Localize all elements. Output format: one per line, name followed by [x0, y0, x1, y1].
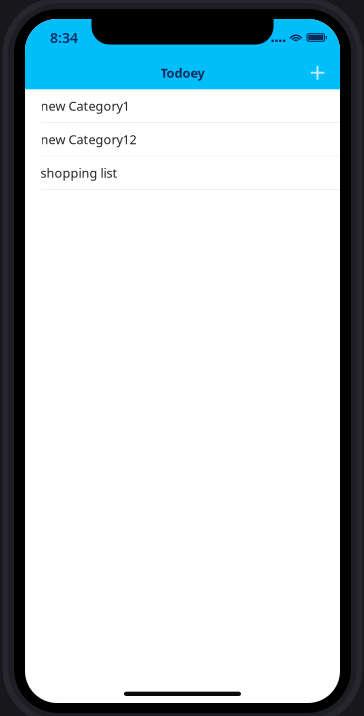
button[interactable]: shopping list — [25, 156, 340, 190]
button[interactable]: Add category — [302, 57, 333, 88]
staticText: new Category1 — [40, 97, 129, 114]
button[interactable]: new Category1 — [25, 89, 340, 123]
staticText: Todoey — [160, 64, 204, 81]
staticText: 8:34 — [50, 28, 78, 47]
staticText: shopping list — [40, 164, 117, 181]
staticText: new Category12 — [40, 131, 136, 148]
button[interactable]: new Category12 — [25, 123, 340, 156]
